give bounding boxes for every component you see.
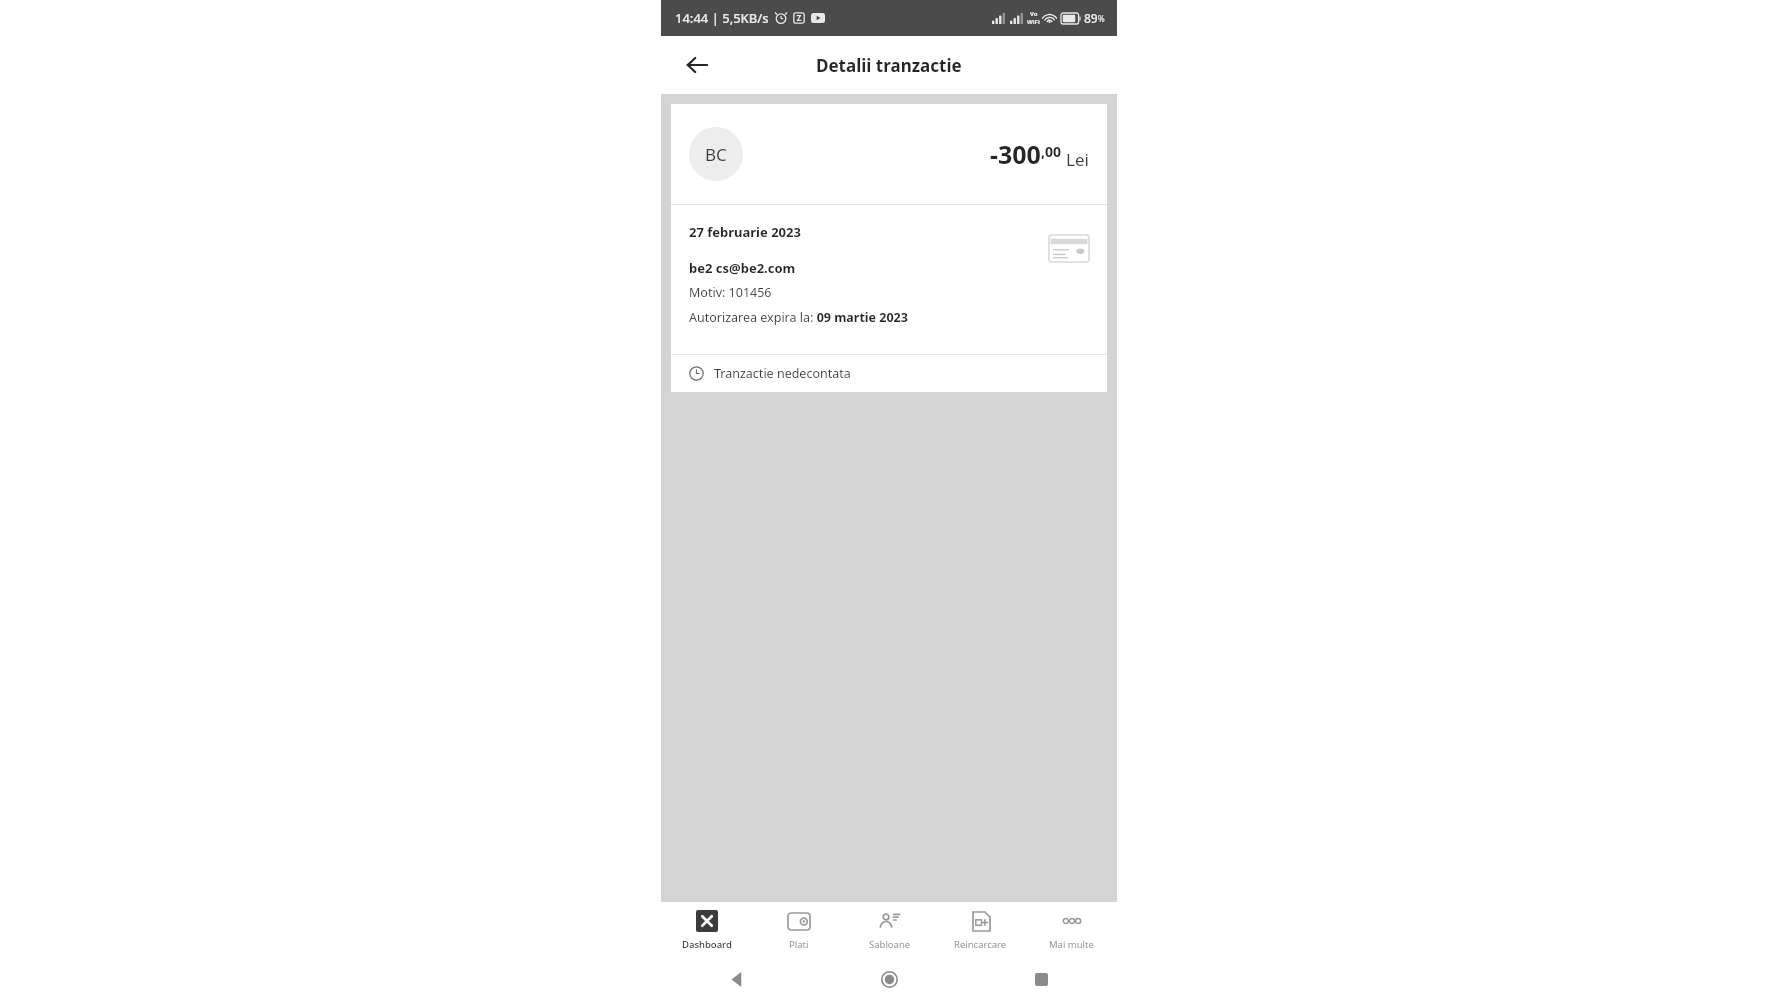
staticText: % — [1098, 13, 1105, 24]
staticText: 27 februarie 2023 — [689, 223, 801, 241]
staticText: Lei — [1066, 148, 1089, 171]
button[interactable]: Mai multe — [1026, 902, 1117, 958]
staticText: Motiv: 101456 — [689, 284, 772, 301]
staticText: Vo — [1030, 10, 1038, 18]
button[interactable]: Recents — [965, 958, 1117, 1000]
button[interactable]: Back — [661, 958, 813, 1000]
staticText: Detalii tranzactie — [816, 54, 962, 77]
staticText: BC — [705, 143, 727, 166]
staticText: WiFi — [1027, 18, 1040, 26]
button[interactable]: Dashboard — [661, 902, 753, 958]
staticText: Autorizarea expira la: 09 martie 2023 — [689, 309, 908, 326]
staticText: -300,00 — [990, 137, 1061, 171]
button[interactable]: Sabloane — [844, 902, 935, 958]
button[interactable]: BC — [671, 104, 1107, 392]
button[interactable]: Reincarcare — [935, 902, 1026, 958]
staticText: be2 cs@be2.com — [689, 259, 796, 277]
staticText: 89 — [1084, 10, 1098, 26]
staticText: Sabloane — [869, 938, 911, 951]
staticText: Mai multe — [1049, 938, 1094, 951]
button[interactable]: Home — [813, 958, 965, 1000]
button[interactable]: Plati — [753, 902, 844, 958]
staticText: 14:44 | 5,5KB/s — [675, 9, 769, 27]
staticText: Plati — [789, 938, 809, 951]
staticText: Dashboard — [682, 938, 732, 951]
staticText: Reincarcare — [954, 938, 1007, 951]
staticText: Tranzactie nedecontata — [714, 365, 851, 382]
button[interactable]: Back — [675, 43, 719, 87]
